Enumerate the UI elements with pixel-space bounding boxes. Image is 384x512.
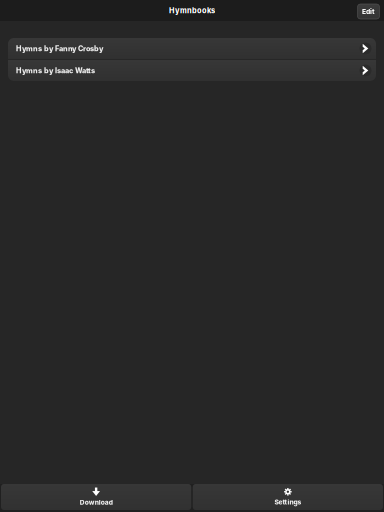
staticText: Hymnbooks [169, 6, 215, 15]
staticText: Settings [274, 498, 301, 506]
button[interactable]: Download [1, 484, 191, 510]
staticText: Edit [362, 7, 375, 16]
staticText: Download [80, 498, 113, 506]
button[interactable]: Edit [357, 4, 379, 19]
staticText: Hymns by Fanny Crosby [16, 44, 103, 53]
staticText: Hymns by Isaac Watts [16, 66, 95, 75]
button[interactable]: Hymns by Fanny Crosby [8, 38, 376, 59]
button[interactable]: Hymns by Isaac Watts [8, 60, 376, 81]
button[interactable]: Settings [193, 484, 383, 510]
